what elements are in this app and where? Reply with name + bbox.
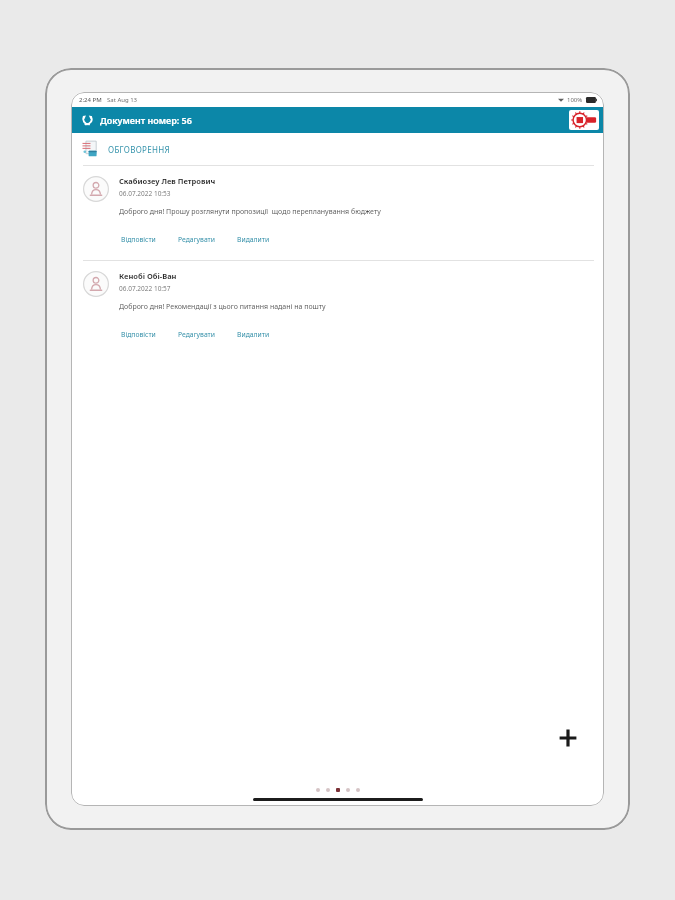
button[interactable]: Відповісти: [119, 233, 158, 246]
staticText: 06.07.2022 10:57: [119, 284, 171, 293]
staticText: 100%: [567, 96, 583, 104]
other: Back: [80, 113, 94, 127]
button[interactable]: Відповісти: [119, 328, 158, 341]
staticText: Скабиозеу Лев Петрович: [119, 176, 216, 186]
staticText: Кенобі Обі-Ван: [119, 271, 177, 281]
staticText: ОБГОВОРЕННЯ: [108, 144, 170, 155]
button[interactable]: Видалити: [235, 328, 272, 341]
button[interactable]: Скабиозеу Лев Петрович: [71, 166, 604, 260]
staticText: Відповісти: [121, 330, 156, 339]
staticText: Sat Aug 13: [107, 96, 138, 104]
staticText: Видалити: [237, 235, 270, 244]
staticText: Доброго дня! Прошу розглянути пропозиції…: [119, 207, 381, 217]
button[interactable]: Кенобі Обі-Ван: [71, 261, 604, 355]
button[interactable]: ОБГОВОРЕННЯ: [71, 133, 604, 165]
button[interactable]: IS-pro logo: [569, 110, 599, 130]
staticText: Редагувати: [178, 235, 215, 244]
button[interactable]: Add comment: [548, 718, 588, 758]
button[interactable]: Редагувати: [176, 233, 217, 246]
staticText: Видалити: [237, 330, 270, 339]
staticText: Редагувати: [178, 330, 215, 339]
button[interactable]: Редагувати: [176, 328, 217, 341]
staticText: Відповісти: [121, 235, 156, 244]
staticText: Документ номер: 56: [100, 114, 192, 126]
staticText: 2:24 PM: [79, 96, 102, 104]
button[interactable]: Back: [77, 110, 195, 130]
button[interactable]: Видалити: [235, 233, 272, 246]
staticText: 06.07.2022 10:53: [119, 189, 171, 198]
staticText: Доброго дня! Рекомендації з цього питанн…: [119, 302, 326, 312]
